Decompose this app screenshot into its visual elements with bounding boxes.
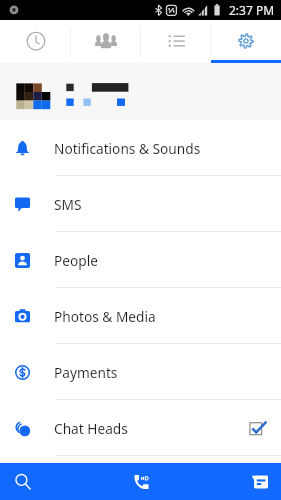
staticText: Photos & Media: [54, 307, 156, 326]
staticText: Chat Heads: [54, 419, 128, 438]
button[interactable]: People: [0, 232, 281, 288]
button[interactable]: Search: [0, 463, 45, 500]
button[interactable]: Recent calls: [0, 20, 71, 63]
button[interactable]: Chat Heads: [0, 400, 281, 456]
button[interactable]: Photos & Media: [0, 288, 281, 344]
button[interactable]: Groups: [71, 20, 141, 63]
staticText: Notifications & Sounds: [54, 139, 201, 158]
button[interactable]: Payments: [0, 344, 281, 400]
staticText: People: [54, 251, 98, 270]
button[interactable]: [0, 63, 281, 120]
button[interactable]: Calls: [111, 463, 171, 500]
button[interactable]: SMS: [0, 176, 281, 232]
staticText: Payments: [54, 363, 118, 382]
staticText: 2:37 PM: [229, 2, 275, 18]
button[interactable]: Notifications & Sounds: [0, 120, 281, 176]
button[interactable]: Settings: [211, 20, 281, 63]
button[interactable]: Messages: [238, 463, 281, 500]
staticText: SMS: [54, 195, 82, 214]
button[interactable]: Contacts list: [141, 20, 211, 63]
